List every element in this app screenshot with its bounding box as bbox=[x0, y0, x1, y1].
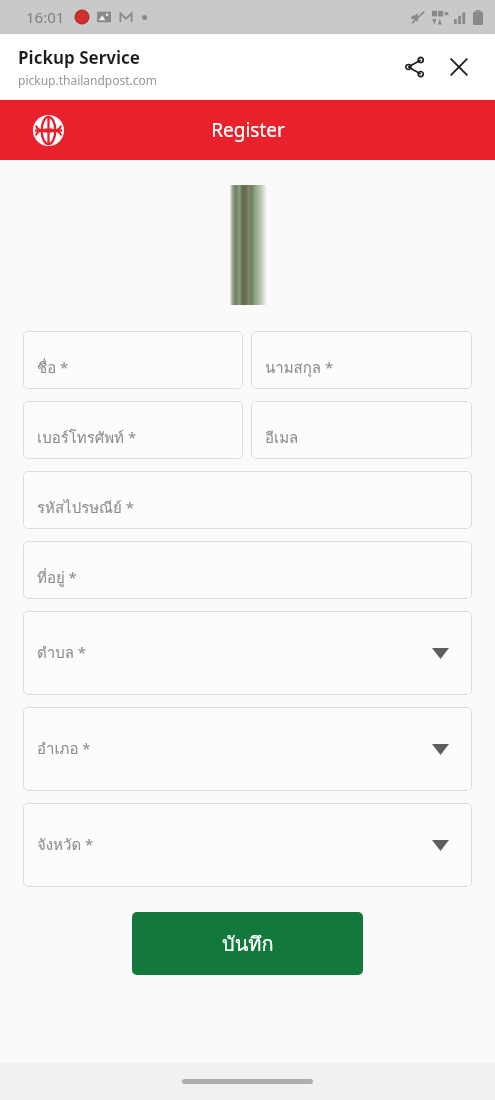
button[interactable]: รหัสไปรษณีย์ * bbox=[23, 471, 472, 529]
staticText: บันทึก bbox=[222, 928, 274, 960]
staticText: ที่อยู่ * bbox=[37, 566, 77, 590]
staticText: ชื่อ * bbox=[37, 356, 69, 380]
button[interactable]: Share bbox=[393, 45, 437, 89]
button[interactable]: เบอร์โทรศัพท์ * bbox=[23, 401, 243, 459]
staticText: Register bbox=[211, 117, 285, 143]
button[interactable]: Change language bbox=[28, 110, 68, 150]
button[interactable]: อำเภอ * bbox=[23, 707, 472, 791]
staticText: Pickup Service bbox=[18, 46, 140, 69]
button[interactable]: ชื่อ * bbox=[23, 331, 243, 389]
button[interactable]: บันทึก bbox=[132, 912, 363, 975]
staticText: ตำบล * bbox=[37, 641, 87, 665]
button[interactable]: ตำบล * bbox=[23, 611, 472, 695]
staticText: อีเมล bbox=[265, 426, 299, 450]
staticText: จังหวัด * bbox=[37, 833, 94, 857]
button[interactable]: ที่อยู่ * bbox=[23, 541, 472, 599]
button[interactable]: Close bbox=[437, 45, 481, 89]
button[interactable]: อีเมล bbox=[251, 401, 472, 459]
button[interactable]: จังหวัด * bbox=[23, 803, 472, 887]
staticText: pickup.thailandpost.com bbox=[18, 72, 158, 88]
staticText: อำเภอ * bbox=[37, 737, 91, 761]
staticText: รหัสไปรษณีย์ * bbox=[37, 496, 134, 520]
button[interactable]: นามสกุล * bbox=[251, 331, 472, 389]
staticText: 16:01 bbox=[26, 7, 65, 27]
staticText: นามสกุล * bbox=[265, 356, 334, 380]
staticText: เบอร์โทรศัพท์ * bbox=[37, 426, 137, 450]
